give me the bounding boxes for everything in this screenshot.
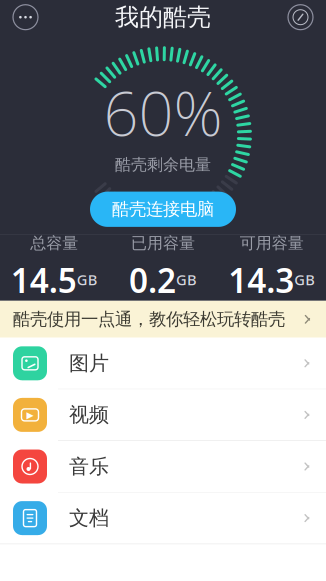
staticText: 已用容量 <box>131 233 195 253</box>
staticText: 0.2 <box>129 258 176 302</box>
button[interactable]: More <box>13 5 38 30</box>
staticText: 酷壳使用一点通，教你轻松玩转酷壳 <box>13 309 285 330</box>
staticText: 可用容量 <box>240 233 304 253</box>
staticText: 文档 <box>69 506 109 530</box>
staticText: GB <box>294 270 315 289</box>
staticText: GB <box>77 270 98 289</box>
button[interactable]: 音乐 <box>0 441 326 493</box>
staticText: 视频 <box>69 403 109 427</box>
staticText: 总容量 <box>30 233 78 253</box>
staticText: 14.3 <box>228 258 294 302</box>
button[interactable]: 酷壳连接电脑 <box>90 192 236 227</box>
staticText: 60% <box>103 71 222 153</box>
button[interactable]: 文档 <box>0 493 326 544</box>
staticText: 酷壳剩余电量 <box>115 155 211 175</box>
button[interactable]: Storage <box>288 5 313 30</box>
staticText: 我的酷壳 <box>115 2 211 32</box>
staticText: 音乐 <box>69 454 109 479</box>
staticText: 酷壳连接电脑 <box>112 199 214 220</box>
staticText: 14.5 <box>11 258 77 302</box>
button[interactable]: 图片 <box>0 338 326 389</box>
button[interactable]: 酷壳使用一点通，教你轻松玩转酷壳 <box>0 301 326 338</box>
staticText: ▶ <box>26 410 33 420</box>
button[interactable]: ▶ <box>0 389 326 441</box>
staticText: 图片 <box>69 351 109 376</box>
staticText: GB <box>176 270 197 289</box>
